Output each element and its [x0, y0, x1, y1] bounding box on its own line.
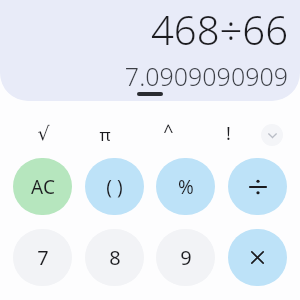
staticText: 7.0909090909: [0, 59, 288, 93]
staticText: 8: [109, 244, 121, 271]
staticText: %: [178, 174, 194, 200]
button[interactable]: ( ): [85, 158, 144, 215]
other: Expand display: [137, 92, 163, 96]
button[interactable]: More functions: [261, 124, 283, 146]
staticText: √: [37, 122, 50, 144]
staticText: 7: [37, 244, 49, 271]
staticText: ^: [163, 119, 174, 144]
staticText: ( ): [106, 174, 123, 200]
button[interactable]: AC: [13, 158, 72, 215]
button[interactable]: Multiply: [228, 229, 287, 286]
button[interactable]: !: [206, 111, 250, 155]
staticText: AC: [31, 174, 55, 200]
button[interactable]: Divide: [228, 158, 287, 215]
button[interactable]: 8: [85, 229, 144, 286]
button[interactable]: 9: [156, 229, 215, 286]
staticText: π: [99, 123, 111, 146]
staticText: 9: [180, 244, 192, 271]
button[interactable]: %: [156, 158, 215, 215]
staticText: 468÷66: [0, 2, 288, 56]
button[interactable]: π: [83, 112, 127, 156]
button[interactable]: ^: [146, 109, 190, 153]
button[interactable]: 7: [13, 229, 72, 286]
staticText: !: [226, 121, 231, 146]
button[interactable]: √: [21, 111, 65, 155]
